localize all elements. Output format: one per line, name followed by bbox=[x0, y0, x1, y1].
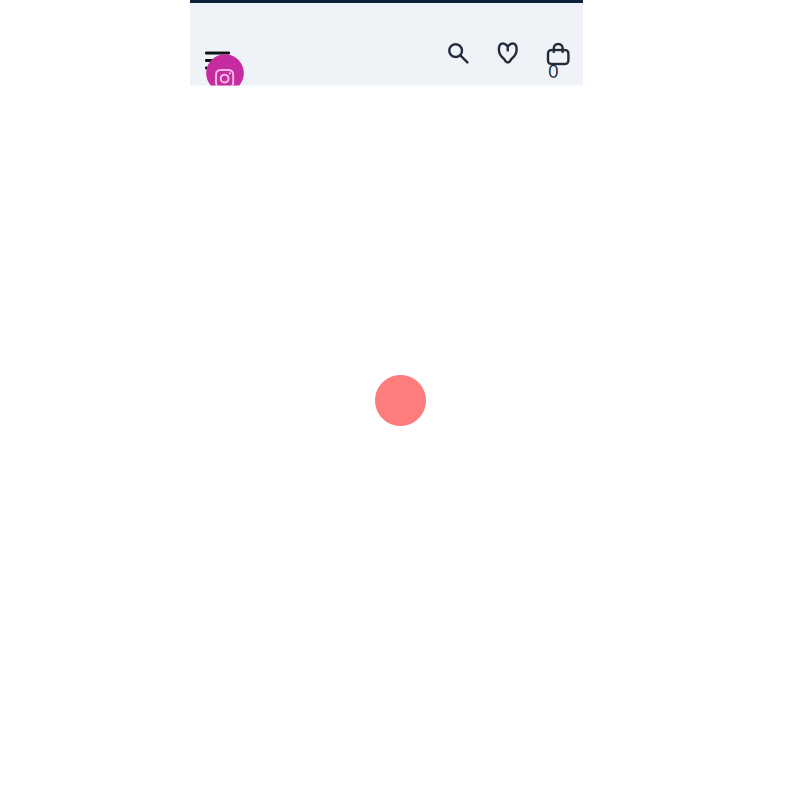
staticText: 0 bbox=[548, 58, 559, 83]
button[interactable]: Cart, 0 items bbox=[540, 37, 576, 83]
button[interactable]: Wishlist bbox=[489, 34, 526, 71]
button[interactable]: Search bbox=[440, 35, 477, 72]
